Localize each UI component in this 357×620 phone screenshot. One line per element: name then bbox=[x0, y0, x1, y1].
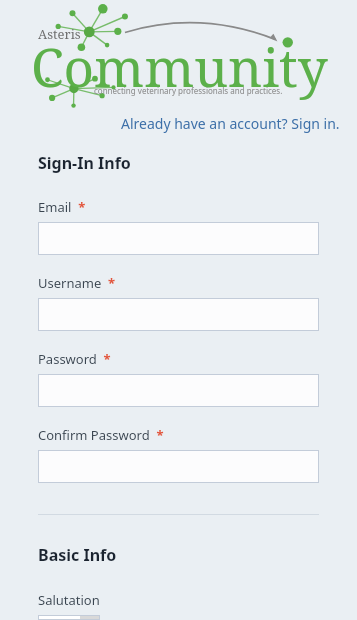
staticText: Sign-In Info bbox=[38, 152, 131, 174]
staticText: connecting veterinary professionals and … bbox=[94, 85, 283, 96]
staticText: Asteris bbox=[38, 25, 81, 43]
staticText: Email * bbox=[38, 198, 86, 216]
staticText: Basic Info bbox=[38, 544, 117, 566]
staticText: Already have an account? Sign in. bbox=[121, 114, 340, 133]
button[interactable]: Email input field bbox=[38, 222, 319, 255]
staticText: Community bbox=[31, 30, 328, 102]
button[interactable]: Salutation dropdown bbox=[38, 615, 100, 620]
staticText: Confirm Password * bbox=[38, 426, 164, 444]
staticText: Password * bbox=[38, 350, 111, 368]
button[interactable]: Already have an account? Sign in. bbox=[117, 110, 344, 137]
staticText: Salutation bbox=[38, 591, 100, 609]
button[interactable]: Confirm Password input field bbox=[38, 450, 319, 483]
button[interactable]: Password input field bbox=[38, 374, 319, 407]
button[interactable]: Username input field bbox=[38, 298, 319, 331]
staticText: Username * bbox=[38, 274, 116, 292]
